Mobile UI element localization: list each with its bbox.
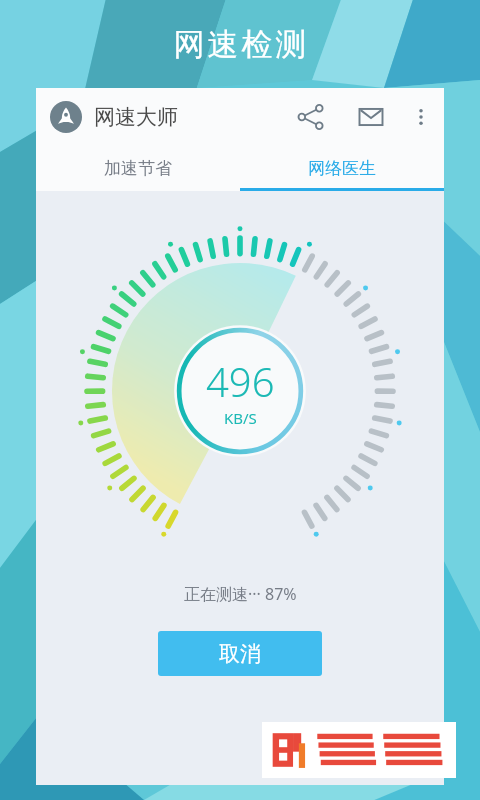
- button[interactable]: 加速节省: [36, 146, 240, 191]
- button[interactable]: 取消: [158, 631, 322, 676]
- button[interactable]: 网络医生: [240, 146, 444, 191]
- staticText: 加速节省: [104, 158, 172, 179]
- staticText: 网速大师: [94, 104, 178, 130]
- button[interactable]: Share: [288, 94, 334, 140]
- staticText: 496: [206, 354, 275, 408]
- button[interactable]: More options: [404, 100, 438, 134]
- button[interactable]: App logo: [50, 101, 82, 133]
- button[interactable]: Messages: [348, 94, 394, 140]
- staticText: 网速检测: [172, 25, 308, 64]
- staticText: 网络医生: [308, 158, 376, 179]
- staticText: 正在测速··· 87%: [184, 583, 297, 605]
- staticText: KB/S: [224, 408, 257, 428]
- staticText: 取消: [219, 641, 261, 667]
